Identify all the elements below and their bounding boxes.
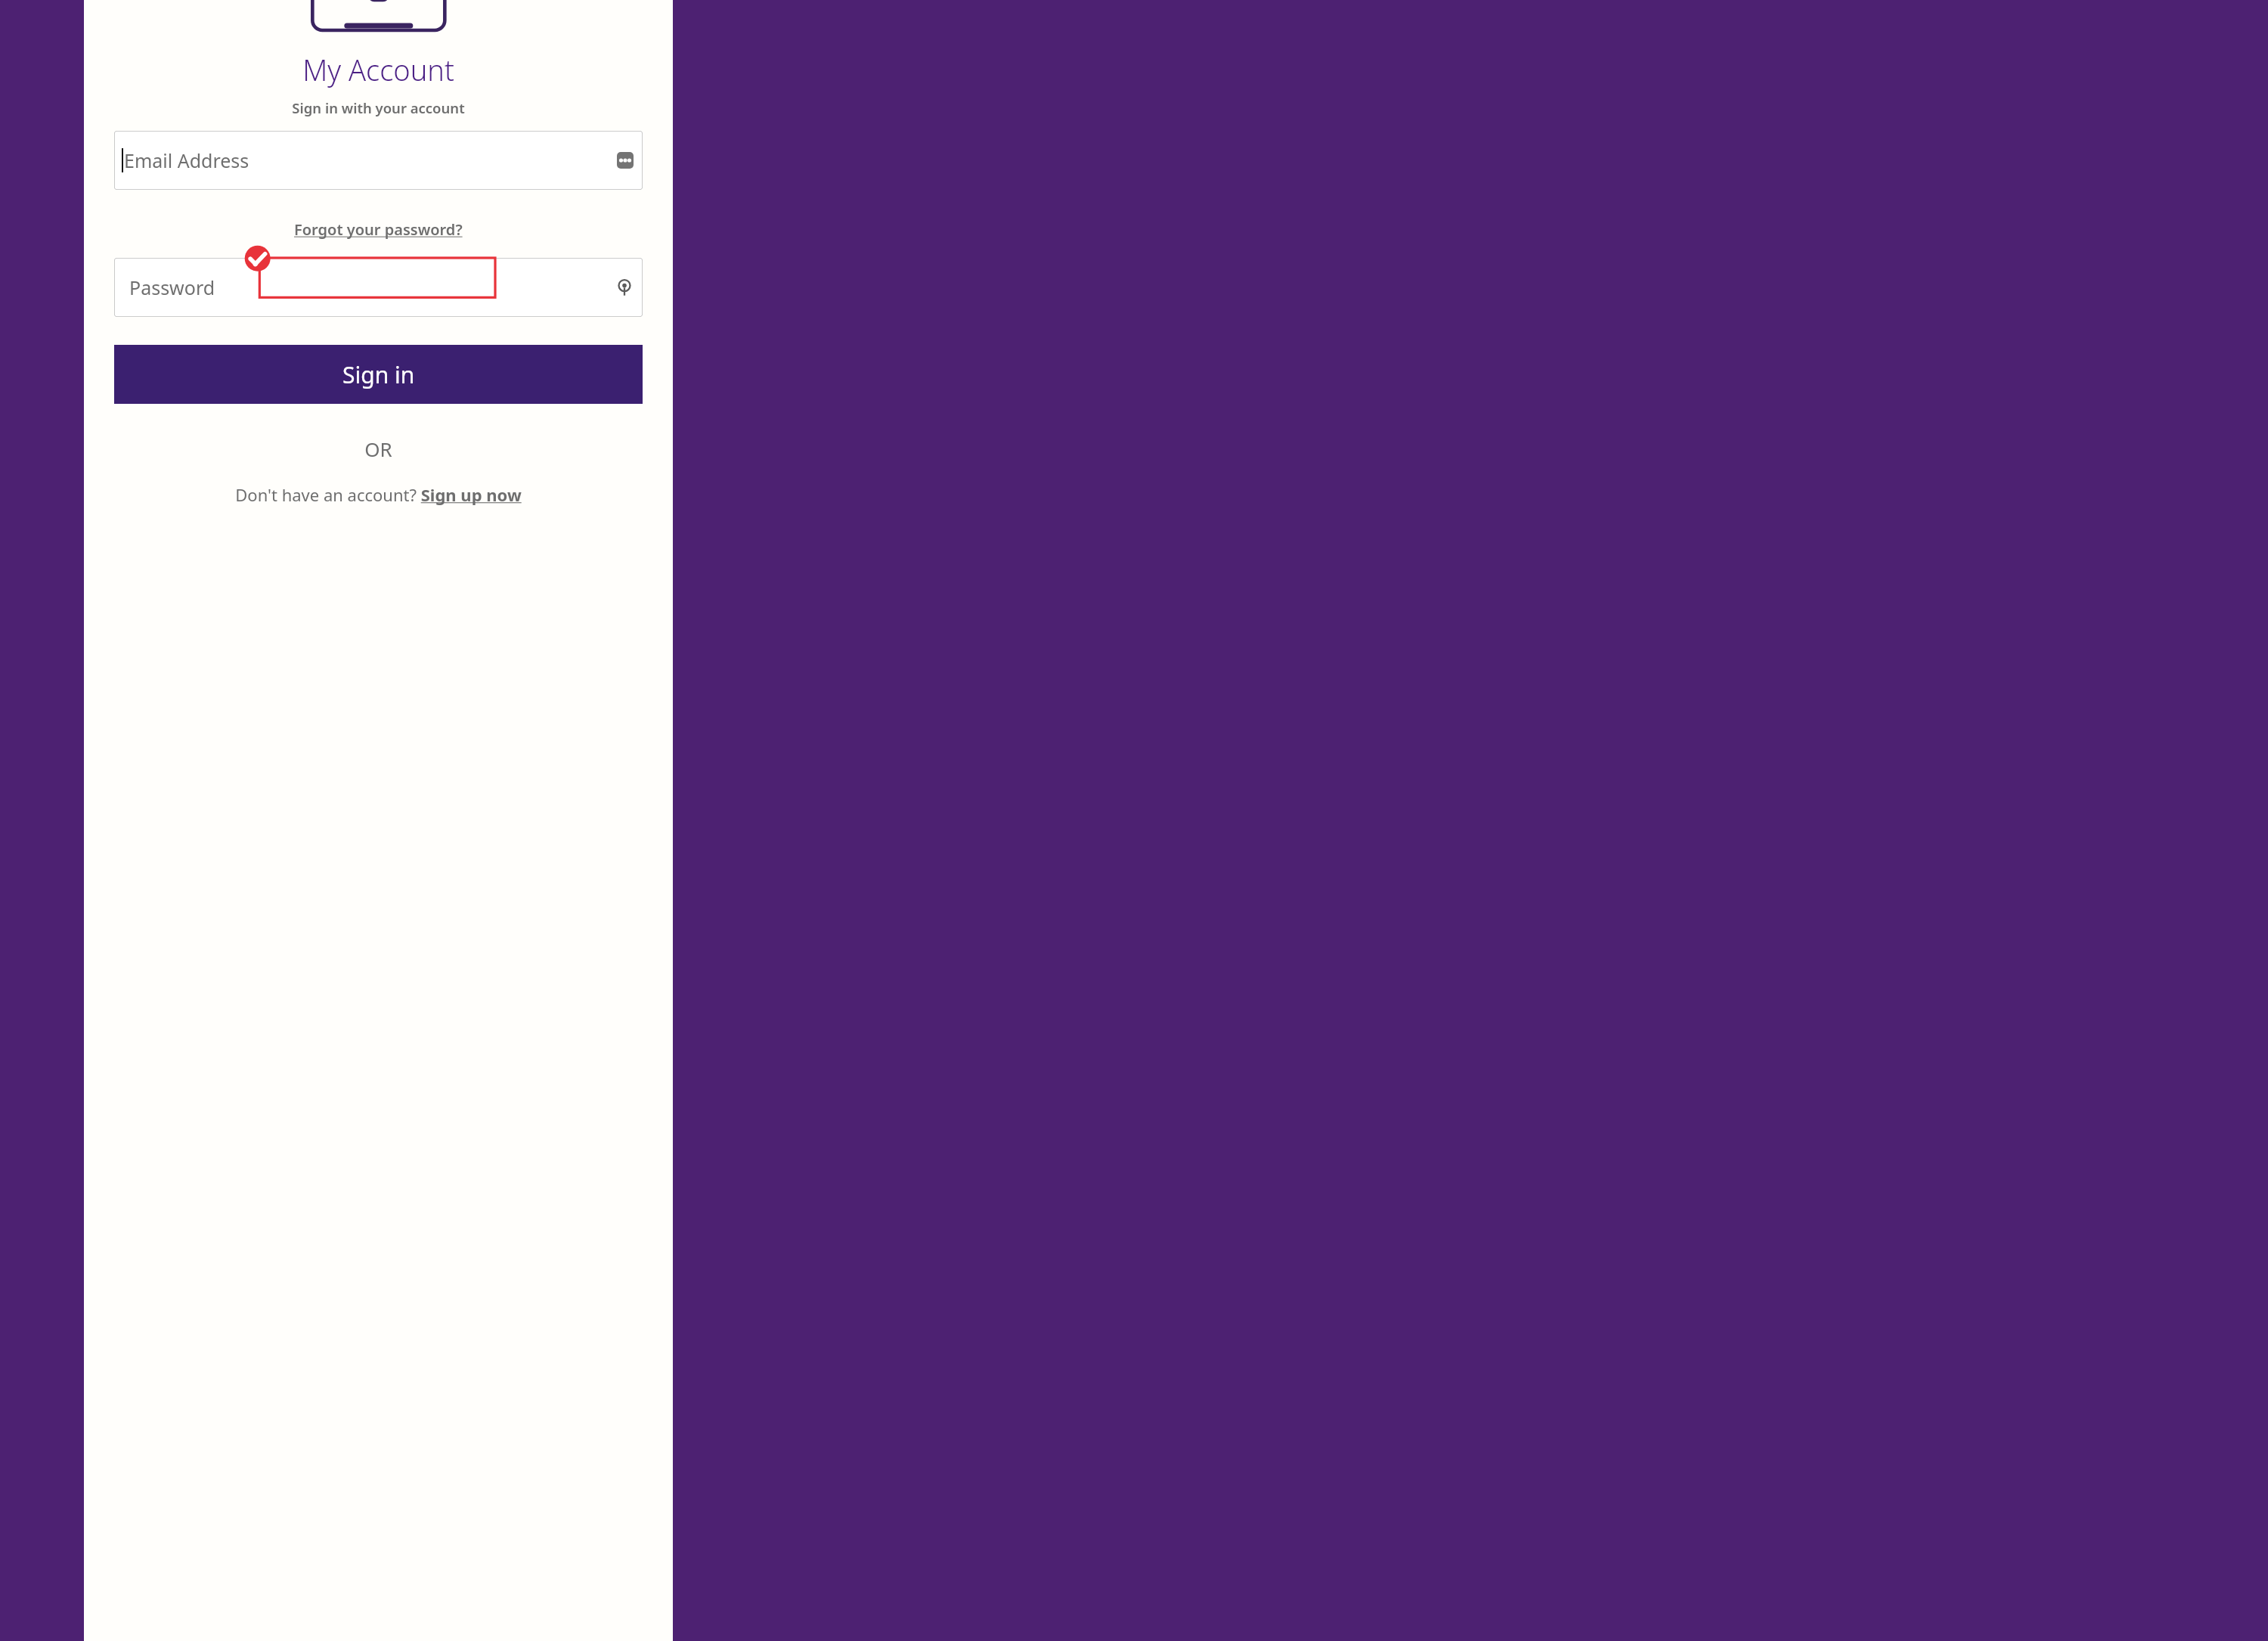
button[interactable]: Password [114, 258, 643, 317]
button[interactable]: Show password key [614, 277, 635, 298]
staticText: Sign in with your account [292, 98, 465, 117]
button[interactable]: Autofill suggestions [615, 150, 635, 170]
button[interactable]: Email Address [114, 131, 643, 190]
button[interactable]: Forgot your password? [291, 218, 466, 241]
staticText: Password [129, 275, 215, 300]
button[interactable]: Don't have an account? Sign up now [232, 480, 525, 509]
staticText: Sign in [342, 359, 415, 390]
staticText: OR [364, 436, 392, 462]
staticText: My Account [302, 50, 454, 89]
button[interactable]: Sign in [114, 345, 643, 404]
staticText: Email Address [124, 147, 249, 173]
